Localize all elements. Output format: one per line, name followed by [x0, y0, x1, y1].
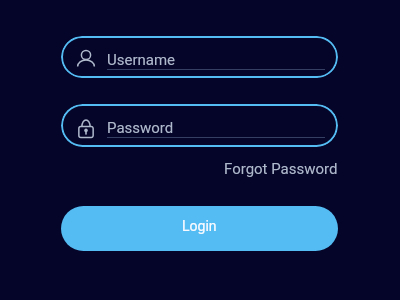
button[interactable] [61, 36, 338, 78]
button[interactable]: Login [61, 206, 338, 251]
button[interactable]: Forgot Password [220, 157, 342, 181]
staticText: Login [182, 218, 217, 234]
staticText: Username [107, 51, 176, 69]
staticText: Forgot Password [224, 160, 338, 178]
button[interactable] [61, 104, 338, 147]
staticText: Password [107, 119, 174, 137]
